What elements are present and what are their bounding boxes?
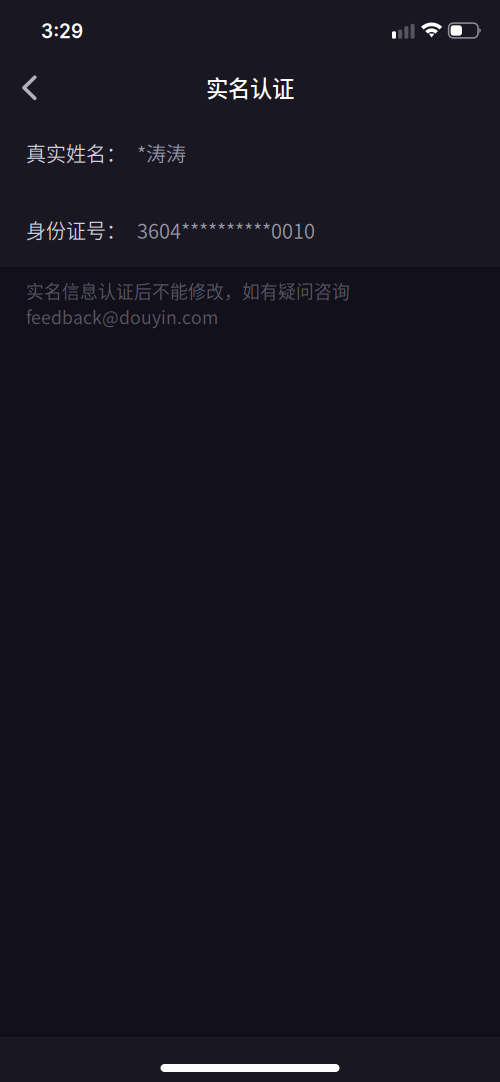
staticText: 真实姓名： xyxy=(26,138,126,167)
staticText: 身份证号： xyxy=(26,215,126,244)
staticText: 实名信息认证后不能修改，如有疑问咨询 xyxy=(26,278,350,304)
staticText: 3604**********0010 xyxy=(137,215,315,244)
staticText: 3:29 xyxy=(41,20,83,43)
staticText: feedback@douyin.com xyxy=(26,304,218,329)
staticText: *涛涛 xyxy=(137,138,186,167)
staticText: 实名认证 xyxy=(206,71,294,103)
button[interactable]: Back xyxy=(8,63,54,113)
